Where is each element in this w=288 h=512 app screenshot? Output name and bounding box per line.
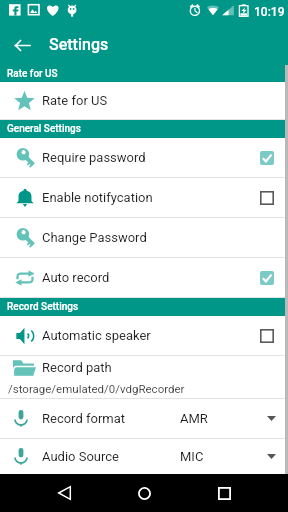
staticText: Enable notifycation [42, 190, 153, 205]
staticText: Rate for US [42, 93, 108, 108]
staticText: General Settings [7, 123, 81, 135]
staticText: Audio Source [42, 449, 119, 464]
staticText: Record format [42, 411, 126, 426]
staticText: 10:19 [254, 5, 285, 19]
button[interactable]: Back [40, 474, 88, 512]
button[interactable]: Change Password [0, 218, 288, 257]
button[interactable]: Record format [0, 399, 288, 438]
button[interactable]: Require password [0, 138, 288, 177]
button[interactable]: Automatic speaker [0, 316, 288, 355]
button[interactable]: Unchecked [255, 324, 279, 348]
button[interactable]: Back [7, 30, 37, 60]
button[interactable]: Home [120, 474, 168, 512]
button[interactable]: Checked [255, 266, 279, 290]
button[interactable]: Unchecked [255, 186, 279, 210]
staticText: AMR [180, 411, 208, 426]
button[interactable]: Recents [200, 474, 248, 512]
button[interactable]: Enable notifycation [0, 178, 288, 217]
staticText: Settings [49, 35, 109, 54]
staticText: Change Password [42, 230, 147, 245]
button[interactable]: Audio Source [0, 439, 288, 474]
button[interactable]: Rate for US [0, 82, 288, 119]
staticText: Rate for US [7, 68, 58, 80]
staticText: Automatic speaker [42, 328, 151, 343]
staticText: Record path [42, 360, 112, 375]
button[interactable]: Record path [0, 356, 288, 399]
button[interactable]: MIC [180, 449, 276, 464]
button[interactable]: AMR [180, 411, 276, 426]
button[interactable]: Auto record [0, 258, 288, 297]
staticText: MIC [180, 449, 204, 464]
staticText: Auto record [42, 270, 110, 285]
staticText: /storage/emulated/0/vdgRecorder [8, 382, 185, 395]
staticText: Require password [42, 150, 146, 165]
staticText: Record Settings [7, 301, 79, 313]
button[interactable]: Checked [255, 146, 279, 170]
